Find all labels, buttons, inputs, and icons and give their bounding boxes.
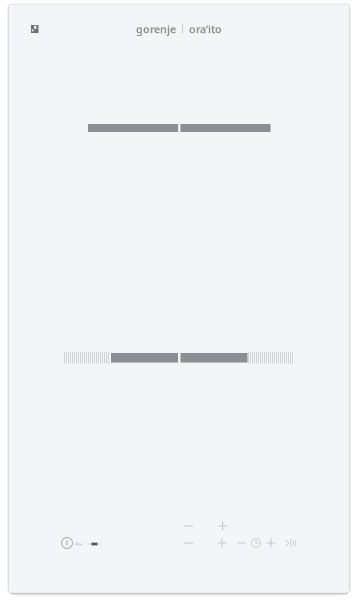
button[interactable]: Increase upper zone [214,518,230,534]
button[interactable]: Decrease lower zone [180,535,196,551]
button[interactable]: Decrease timer [233,535,249,551]
button[interactable]: Timer [248,535,264,551]
button[interactable]: Increase timer [263,535,279,551]
staticText: oraʼito [189,22,222,36]
button[interactable]: Power level [87,538,100,550]
staticText: gorenje [136,22,176,36]
button[interactable]: Decrease upper zone [180,518,196,534]
button[interactable]: Child lock [73,538,85,550]
button[interactable]: Power [58,534,76,552]
button[interactable]: Increase lower zone [214,535,230,551]
button[interactable]: Bridge zone [283,535,299,551]
